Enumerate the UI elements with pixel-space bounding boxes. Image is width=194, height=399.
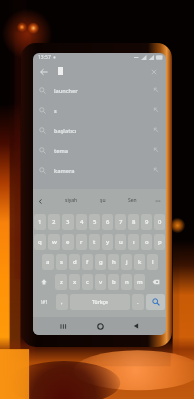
staticText: a: [46, 258, 50, 266]
button[interactable]: c: [82, 274, 93, 290]
button[interactable]: Previous: [35, 196, 45, 206]
button[interactable]: Backspace: [147, 274, 165, 290]
button[interactable]: 2: [48, 214, 60, 230]
button[interactable]: 0: [154, 214, 165, 230]
button[interactable]: o: [141, 234, 152, 250]
staticText: şu: [100, 197, 106, 204]
staticText: kamera: [54, 167, 75, 174]
button[interactable]: 8: [128, 214, 139, 230]
button[interactable]: t: [89, 234, 100, 250]
button[interactable]: !#1: [34, 294, 54, 310]
button[interactable]: Back: [37, 65, 50, 78]
button[interactable]: Back: [129, 319, 143, 333]
staticText: b: [112, 278, 116, 286]
staticText: r: [80, 238, 83, 246]
button[interactable]: r: [76, 234, 87, 250]
staticText: 0: [158, 218, 162, 226]
button[interactable]: kamera: [33, 160, 166, 180]
staticText: ,: [61, 298, 63, 306]
staticText: p: [158, 238, 162, 246]
button[interactable]: 4: [76, 214, 87, 230]
button[interactable]: Recents: [56, 319, 70, 333]
button[interactable]: Search: [146, 294, 165, 310]
button[interactable]: z: [55, 274, 67, 290]
staticText: n: [125, 278, 129, 286]
button[interactable]: w: [48, 234, 60, 250]
staticText: Sen: [128, 197, 137, 204]
button[interactable]: 6: [102, 214, 113, 230]
button[interactable]: ı: [128, 234, 139, 250]
button[interactable]: n: [121, 274, 132, 290]
button[interactable]: s: [33, 100, 166, 120]
button[interactable]: s: [56, 254, 67, 270]
button[interactable]: l: [147, 254, 158, 270]
staticText: 4: [80, 218, 84, 226]
staticText: f: [86, 258, 89, 266]
staticText: w: [52, 238, 57, 246]
button[interactable]: f: [82, 254, 93, 270]
button[interactable]: More: [153, 196, 163, 206]
staticText: ı: [133, 238, 135, 246]
staticText: 2: [52, 218, 56, 226]
staticText: 8: [132, 218, 136, 226]
staticText: s: [54, 107, 57, 114]
button[interactable]: q: [34, 234, 46, 250]
staticText: o: [145, 238, 149, 246]
staticText: q: [38, 238, 42, 246]
button[interactable]: j: [121, 254, 132, 270]
button[interactable]: a: [42, 254, 54, 270]
staticText: s: [60, 258, 63, 266]
staticText: g: [99, 258, 103, 266]
staticText: 7: [119, 218, 123, 226]
staticText: j: [126, 258, 128, 266]
staticText: m: [137, 278, 143, 286]
staticText: h: [112, 258, 116, 266]
button[interactable]: e: [62, 234, 74, 250]
staticText: v: [99, 278, 103, 286]
button[interactable]: x: [69, 274, 80, 290]
button[interactable]: başlatıcı: [33, 120, 166, 140]
staticText: k: [138, 258, 142, 266]
button[interactable]: tema: [33, 140, 166, 160]
button[interactable]: m: [134, 274, 145, 290]
staticText: d: [73, 258, 77, 266]
button[interactable]: u: [115, 234, 126, 250]
staticText: 1: [38, 218, 42, 226]
button[interactable]: Türkçe: [70, 294, 130, 310]
staticText: 5: [93, 218, 97, 226]
staticText: x: [73, 278, 77, 286]
staticText: başlatıcı: [54, 127, 77, 134]
button[interactable]: k: [134, 254, 145, 270]
staticText: launcher: [54, 87, 78, 94]
button[interactable]: ,: [56, 294, 68, 310]
button[interactable]: g: [95, 254, 106, 270]
staticText: z: [60, 278, 63, 286]
staticText: t: [93, 238, 96, 246]
staticText: y: [106, 238, 110, 246]
button[interactable]: p: [154, 234, 165, 250]
button[interactable]: launcher: [33, 80, 166, 100]
button[interactable]: Shift: [34, 274, 53, 290]
staticText: u: [119, 238, 123, 246]
button[interactable]: d: [69, 254, 80, 270]
button[interactable]: 5: [89, 214, 100, 230]
button[interactable]: 3: [62, 214, 74, 230]
staticText: !#1: [41, 299, 48, 305]
staticText: 3: [66, 218, 70, 226]
staticText: c: [86, 278, 89, 286]
button[interactable]: 9: [141, 214, 152, 230]
staticText: 9: [145, 218, 149, 226]
button[interactable]: .: [132, 294, 144, 310]
button[interactable]: 1: [34, 214, 46, 230]
button[interactable]: y: [102, 234, 113, 250]
button[interactable]: v: [95, 274, 106, 290]
staticText: l: [152, 258, 154, 266]
staticText: tema: [54, 147, 68, 154]
button[interactable]: Clear: [147, 65, 160, 78]
button[interactable]: h: [108, 254, 119, 270]
button[interactable]: Home: [93, 319, 107, 333]
button[interactable]: b: [108, 274, 119, 290]
staticText: 13:57: [38, 54, 51, 61]
staticText: 6: [106, 218, 110, 226]
button[interactable]: 7: [115, 214, 126, 230]
